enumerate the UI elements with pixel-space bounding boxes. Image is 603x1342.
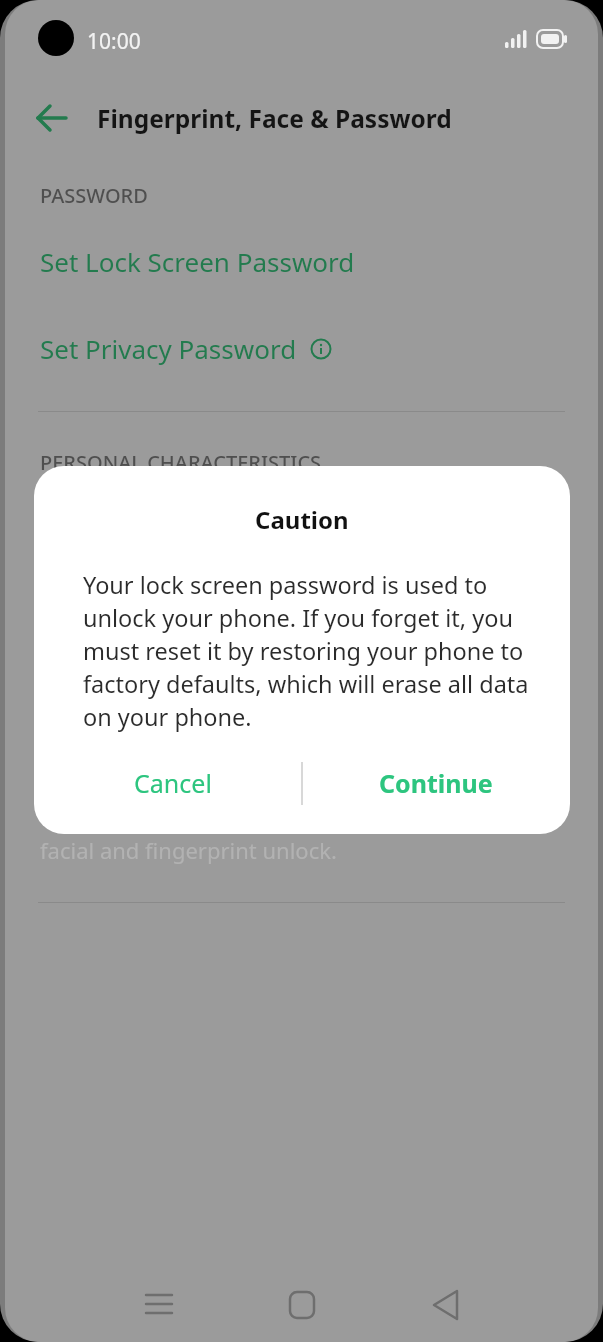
staticText: Set Lock Screen Password (40, 244, 355, 279)
button[interactable] (262, 1277, 342, 1333)
button[interactable] (405, 1277, 485, 1333)
staticText: PASSWORD (40, 182, 148, 209)
staticText: Caution (255, 503, 349, 536)
button[interactable] (119, 1277, 199, 1333)
button[interactable] (30, 98, 74, 138)
button[interactable]: Set Lock Screen Password (40, 238, 355, 285)
staticText: facial and fingerprint unlock. (40, 835, 337, 865)
button[interactable]: Cancel (68, 757, 278, 809)
staticText: Your lock screen password is used to unl… (83, 569, 535, 733)
staticText: Fingerprint, Face & Password (97, 102, 452, 135)
staticText: 10:00 (87, 27, 141, 56)
button[interactable]: Set Privacy Password (40, 325, 332, 372)
staticText: Set Privacy Password (40, 331, 297, 366)
staticText: Cancel (134, 766, 212, 800)
staticText: PERSONAL CHARACTERISTICS (40, 449, 322, 476)
button[interactable]: Continue (331, 757, 541, 809)
staticText: Continue (379, 766, 493, 800)
